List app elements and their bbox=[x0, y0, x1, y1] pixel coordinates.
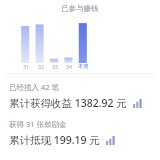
button[interactable]: 获得 31 张鼓励金 bbox=[0, 119, 160, 129]
staticText: 32 bbox=[38, 63, 44, 70]
staticText: 累计抵现 199.19 元 bbox=[9, 133, 100, 147]
staticText: 本周 bbox=[78, 63, 89, 70]
button[interactable]: 已经揽入 42 笔 bbox=[0, 82, 160, 92]
button[interactable]: 查看收益明细 bbox=[132, 98, 143, 109]
staticText: 获得 31 张鼓励金 bbox=[9, 119, 67, 129]
staticText: 已参与赚钱 bbox=[61, 4, 99, 13]
staticText: 已经揽入 42 笔 bbox=[9, 82, 59, 92]
button[interactable]: 累计获得收益 1382.92 元 bbox=[0, 96, 160, 110]
staticText: 34 bbox=[66, 63, 72, 70]
staticText: 33 bbox=[52, 63, 58, 70]
button[interactable]: 累计抵现 199.19 元 bbox=[0, 133, 160, 147]
staticText: 累计获得收益 1382.92 元 bbox=[9, 96, 127, 110]
staticText: 31 bbox=[23, 63, 29, 70]
button[interactable]: 查看抵现明细 bbox=[105, 135, 116, 146]
